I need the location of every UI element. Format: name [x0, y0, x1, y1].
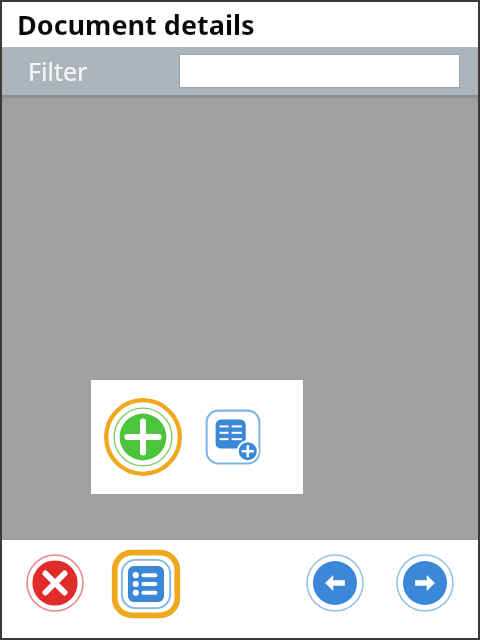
button[interactable]: Add document [201, 405, 265, 469]
button[interactable]: Forward [394, 552, 456, 614]
button[interactable]: List [110, 548, 182, 620]
button[interactable]: Add new [101, 395, 185, 479]
staticText: Filter [28, 54, 88, 88]
staticText: Document details [17, 6, 255, 43]
button[interactable]: Cancel [24, 552, 86, 614]
button[interactable]: Back [304, 552, 366, 614]
